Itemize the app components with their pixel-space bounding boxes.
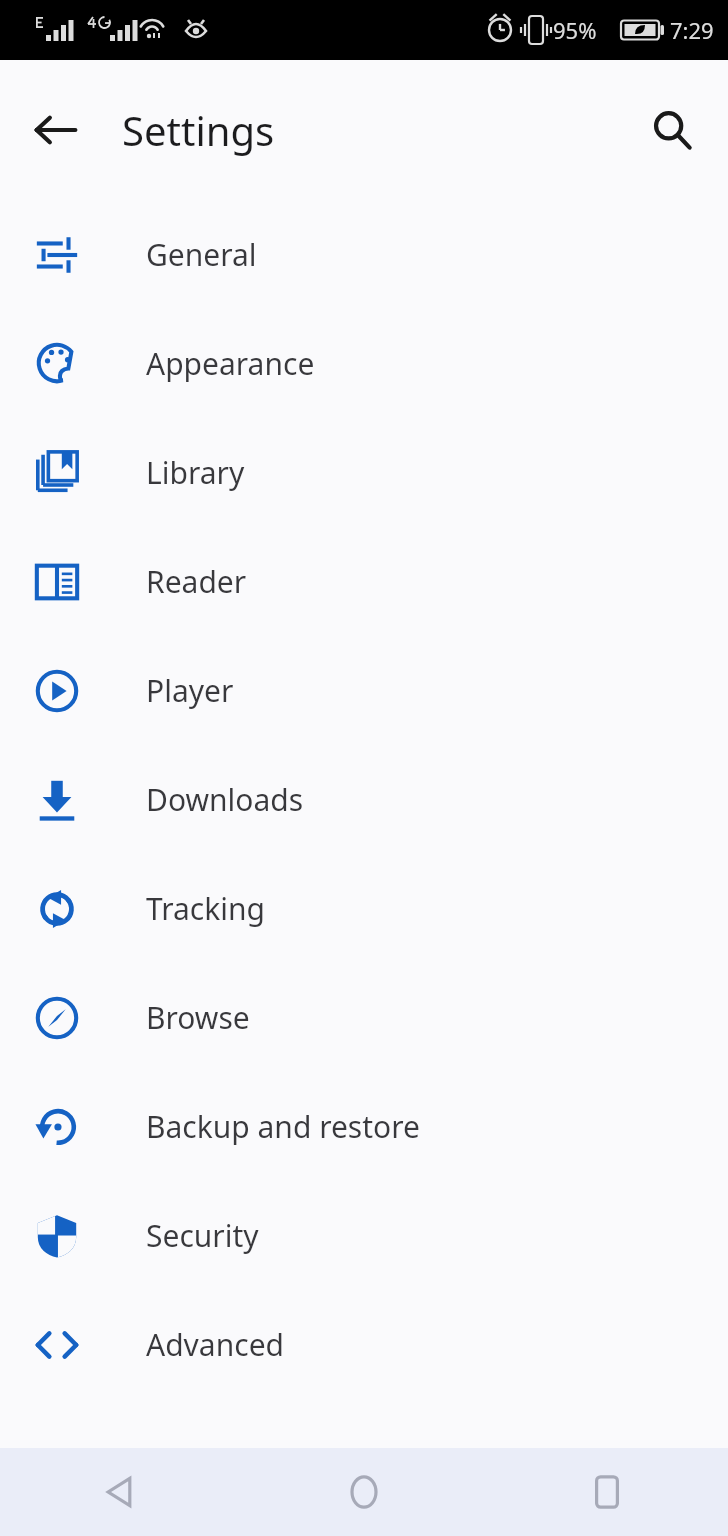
button[interactable]: Browse [0, 963, 728, 1072]
staticText: Tracking [146, 888, 265, 929]
staticText: Browse [146, 997, 250, 1038]
button[interactable]: Backup and restore [0, 1072, 728, 1181]
button[interactable]: Back [20, 94, 92, 166]
staticText: Advanced [146, 1324, 284, 1365]
staticText: Reader [146, 561, 247, 602]
staticText: Library [146, 452, 245, 493]
button[interactable]: Back [0, 1448, 242, 1536]
button[interactable]: Home [242, 1448, 485, 1536]
button[interactable]: Appearance [0, 309, 728, 418]
button[interactable]: Security [0, 1181, 728, 1290]
button[interactable]: Downloads [0, 745, 728, 854]
staticText: Appearance [146, 343, 315, 384]
button[interactable]: Recents [485, 1448, 728, 1536]
button[interactable]: General [0, 200, 728, 309]
button[interactable]: Advanced [0, 1290, 728, 1399]
staticText: 7:29 [670, 15, 714, 45]
staticText: Player [146, 670, 234, 711]
button[interactable]: Player [0, 636, 728, 745]
staticText: Backup and restore [146, 1106, 420, 1147]
staticText: General [146, 234, 257, 275]
staticText: 95% [553, 15, 597, 45]
staticText: Settings [122, 103, 275, 157]
button[interactable]: Search [636, 94, 708, 166]
button[interactable]: Tracking [0, 854, 728, 963]
staticText: Downloads [146, 779, 304, 820]
button[interactable]: Library [0, 418, 728, 527]
staticText: Security [146, 1215, 259, 1256]
button[interactable]: Reader [0, 527, 728, 636]
